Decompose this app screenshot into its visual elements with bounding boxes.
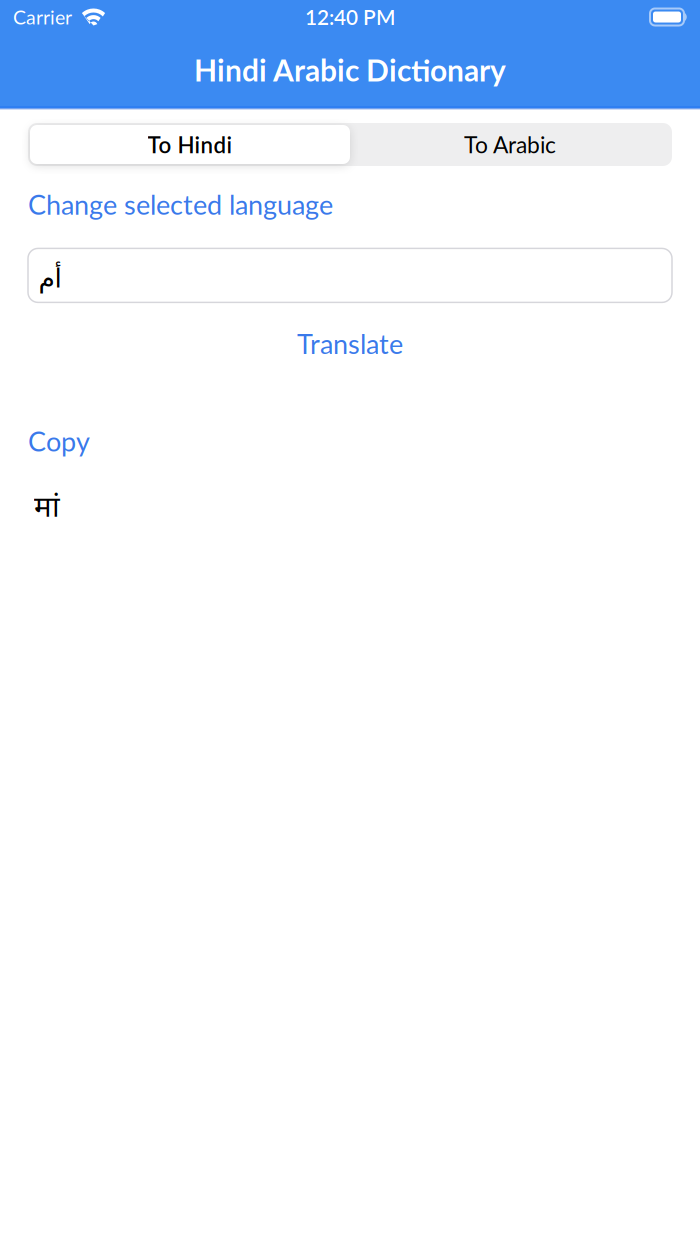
button[interactable]: Change selected language <box>28 188 333 220</box>
staticText: Hindi Arabic Dictionary <box>194 52 506 88</box>
button[interactable]: Copy <box>28 425 90 457</box>
staticText: Carrier <box>13 5 72 29</box>
staticText: Translate <box>297 327 403 360</box>
button[interactable]: To Arabic <box>350 125 670 164</box>
button[interactable]: Text input <box>28 248 672 302</box>
staticText: Change selected language <box>28 188 333 220</box>
button[interactable]: To Hindi <box>30 125 350 164</box>
staticText: أم <box>38 263 61 294</box>
staticText: To Arabic <box>464 131 556 158</box>
staticText: मां <box>34 485 60 525</box>
staticText: Copy <box>28 425 90 457</box>
button[interactable]: Translate <box>28 327 672 360</box>
staticText: To Hindi <box>147 131 232 158</box>
staticText: 12:40 PM <box>305 4 395 29</box>
